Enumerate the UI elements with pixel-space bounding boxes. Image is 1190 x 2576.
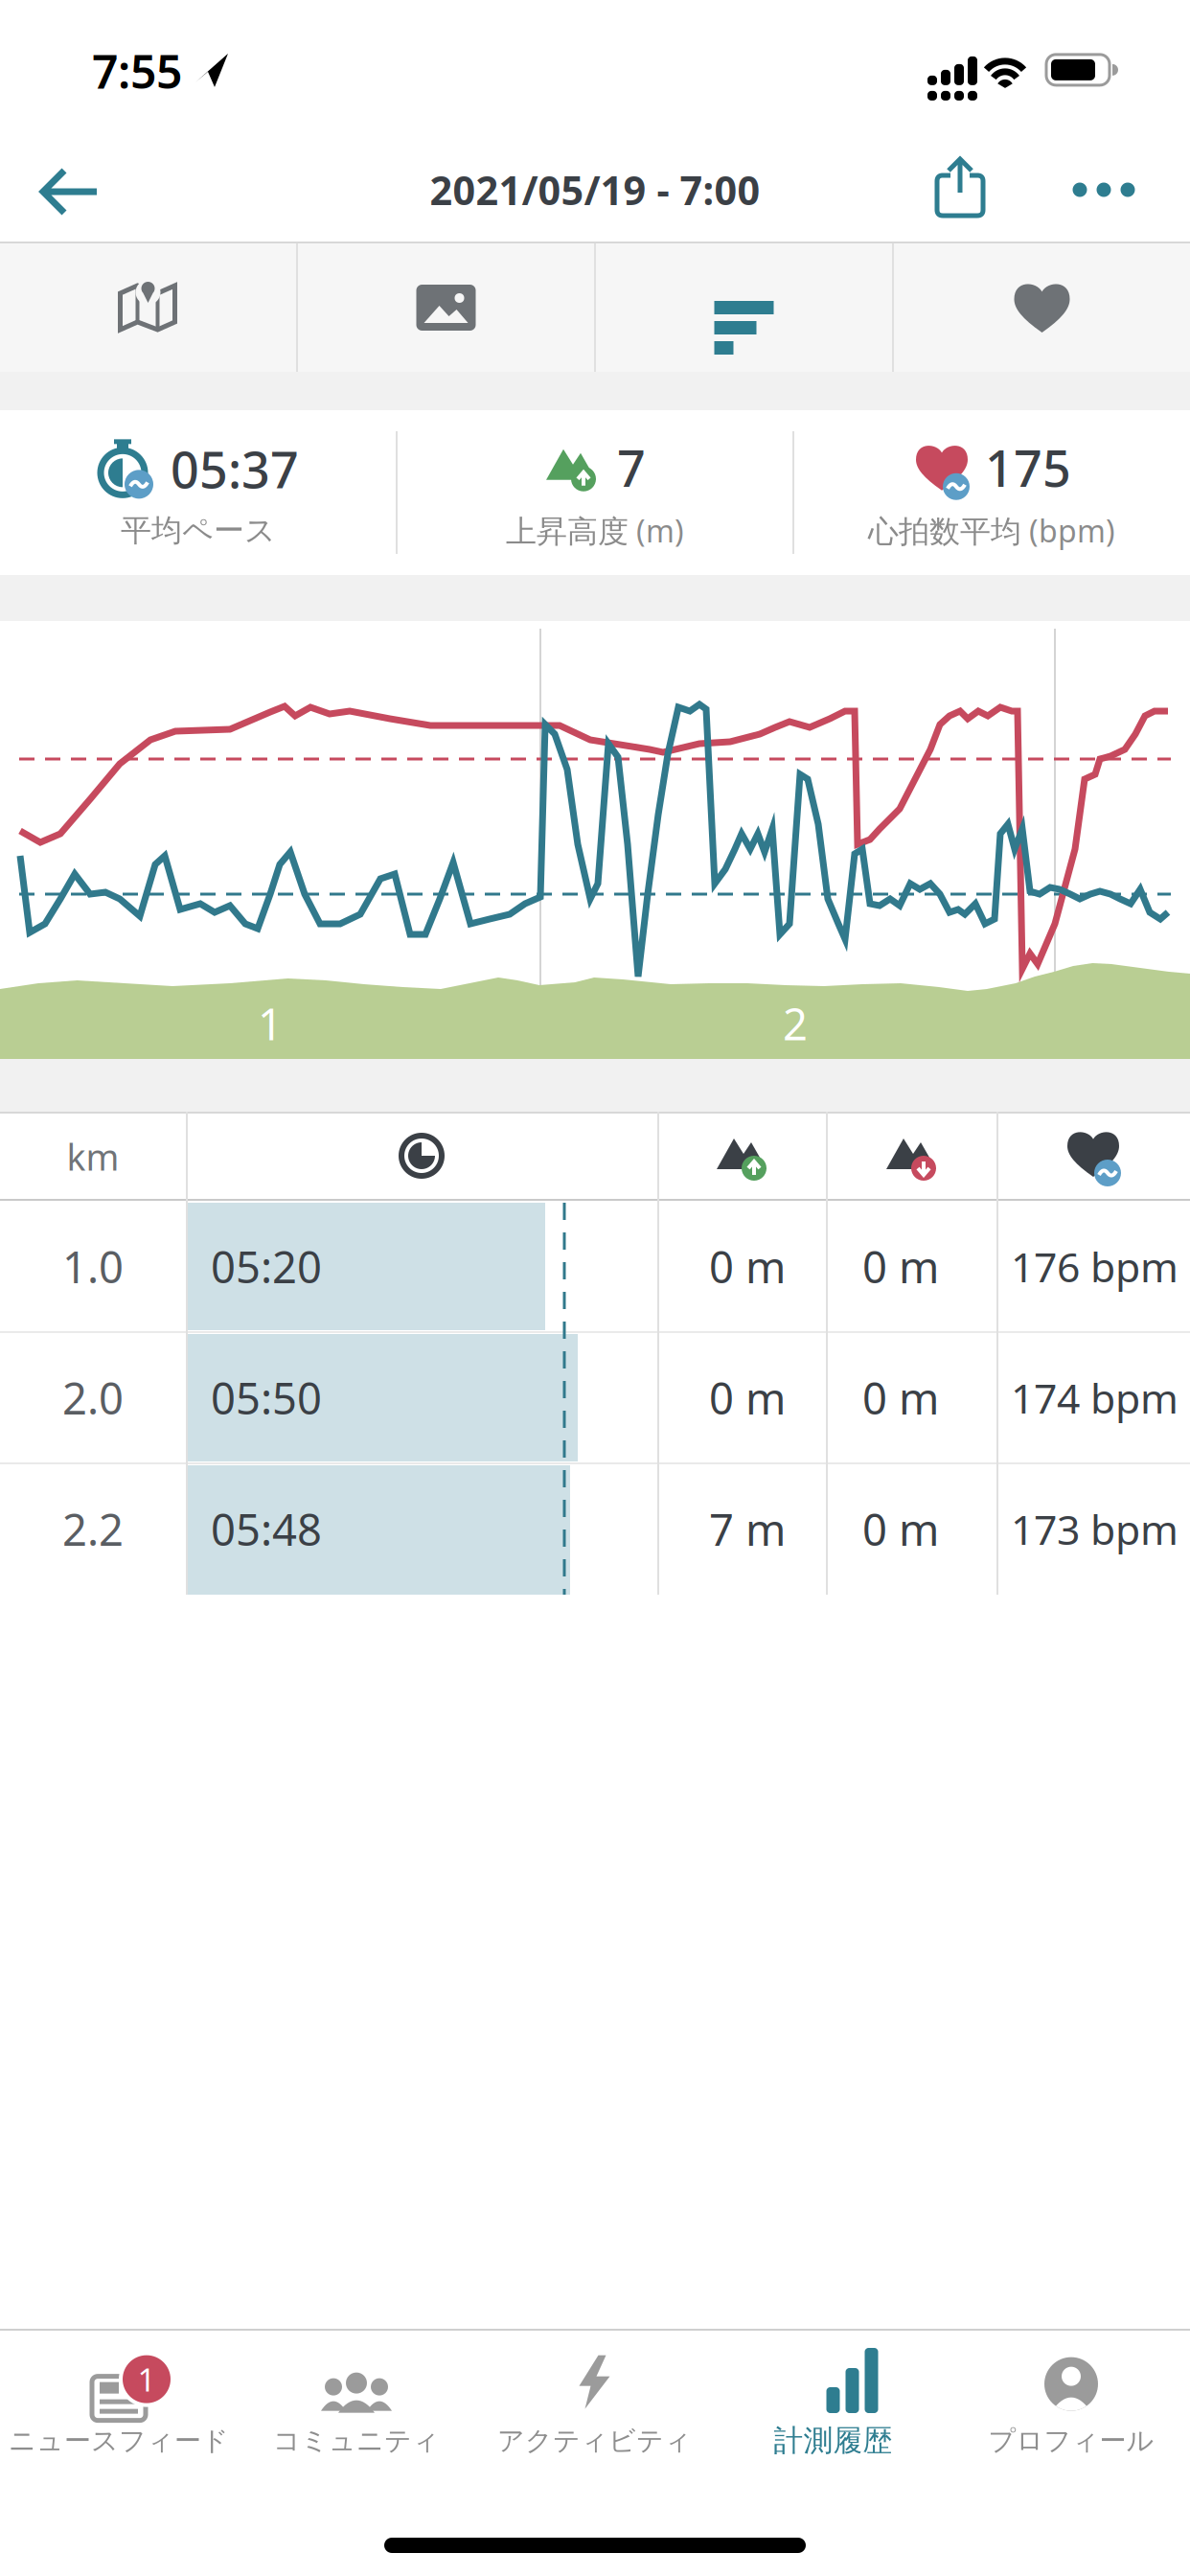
button[interactable]: Back	[39, 168, 99, 216]
staticText: 176 bpm	[1011, 1239, 1179, 1294]
button[interactable]: More	[1073, 183, 1135, 197]
staticText: 計測履歴	[774, 2423, 892, 2459]
button[interactable]: コミュニティ	[273, 2348, 440, 2457]
staticText: 0 m	[862, 1500, 939, 1558]
staticText: 1	[137, 2358, 156, 2400]
staticText: 05:20	[211, 1238, 322, 1295]
button[interactable]: 計測履歴	[774, 2346, 892, 2459]
staticText: 心拍数平均 (bpm)	[868, 510, 1115, 551]
staticText: 7 m	[709, 1500, 786, 1558]
staticText: 2	[783, 995, 808, 1052]
staticText: コミュニティ	[273, 2424, 440, 2457]
staticText: 2.0	[62, 1369, 124, 1427]
staticText: 0 m	[862, 1369, 939, 1427]
staticText: 0 m	[709, 1369, 786, 1427]
button[interactable]: アクティビティ	[497, 2348, 692, 2457]
staticText: 2.2	[62, 1500, 124, 1558]
staticText: 174 bpm	[1011, 1371, 1179, 1425]
staticText: ニュースフィード	[9, 2424, 229, 2457]
staticText: アクティビティ	[497, 2424, 692, 2457]
staticText: 175	[985, 434, 1071, 501]
staticText: 1.0	[62, 1238, 124, 1295]
staticText: 平均ペース	[121, 512, 276, 549]
staticText: 173 bpm	[1011, 1502, 1179, 1556]
button[interactable]: プロフィール	[988, 2348, 1154, 2457]
staticText: プロフィール	[988, 2424, 1154, 2457]
staticText: 7	[617, 434, 646, 501]
staticText: 上昇高度 (m)	[506, 510, 684, 551]
staticText: 0 m	[862, 1238, 939, 1295]
button[interactable]: Charts	[596, 243, 892, 372]
button[interactable]: Share	[935, 158, 985, 218]
staticText: 7:55	[92, 40, 182, 101]
button[interactable]: Map	[0, 243, 296, 372]
staticText: 05:50	[211, 1369, 322, 1427]
staticText: 1	[258, 995, 283, 1052]
button[interactable]: Photos	[298, 243, 594, 372]
staticText: 0 m	[709, 1238, 786, 1295]
staticText: 05:37	[171, 436, 299, 502]
staticText: km	[67, 1133, 119, 1180]
staticText: 2021/05/19 - 7:00	[430, 163, 760, 216]
button[interactable]: 1	[9, 2348, 229, 2457]
button[interactable]: Likes	[894, 243, 1190, 372]
staticText: 05:48	[211, 1500, 322, 1558]
